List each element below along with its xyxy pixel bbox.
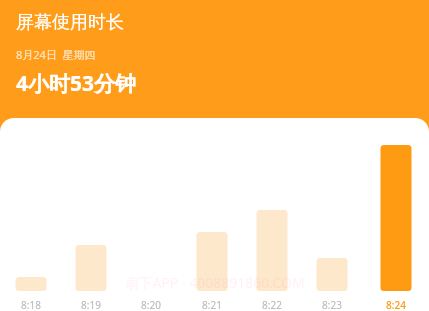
staticText: 8:20 (141, 298, 161, 311)
staticText: 8:19 (81, 298, 101, 311)
staticText: 4小时53分钟 (16, 69, 137, 98)
staticText: 8:18 (21, 298, 41, 311)
staticText: 8:23 (322, 298, 342, 311)
staticText: 8月24日 星期四 (16, 47, 96, 62)
staticText: 8:24 (386, 298, 406, 311)
staticText: 扇下APP · 4008891860.COM (124, 273, 305, 292)
button[interactable]: 屏幕使用时长 (0, 0, 429, 118)
staticText: 屏幕使用时长 (16, 11, 124, 34)
button[interactable]: Screen time chart (0, 118, 429, 311)
staticText: 8:21 (202, 298, 222, 311)
staticText: 8:22 (262, 298, 282, 311)
